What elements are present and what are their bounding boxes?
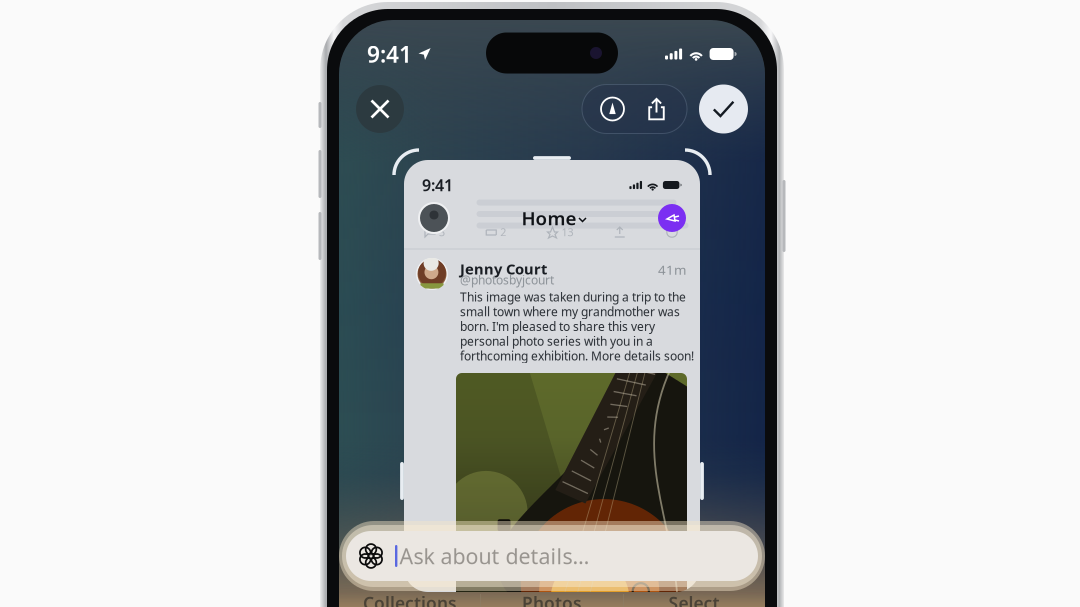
staticText: This image was taken during a trip to th… <box>460 289 686 305</box>
button[interactable]: Share <box>634 85 678 133</box>
staticText: 2 <box>500 225 506 239</box>
staticText: 3 <box>439 225 445 239</box>
button[interactable]: Markup <box>590 85 634 133</box>
staticText: small town where my grandmother was <box>460 304 680 320</box>
staticText: @photosbyjcourt <box>460 272 554 288</box>
staticText: Home <box>521 206 576 230</box>
staticText: 41m <box>658 261 686 278</box>
button[interactable]: Close <box>356 85 404 133</box>
staticText: Ask about details… <box>399 542 589 570</box>
staticText: 9:41 <box>367 39 412 69</box>
staticText: forthcoming exhibition. More details soo… <box>460 348 694 364</box>
staticText: 9:41 <box>422 174 453 196</box>
staticText: born. I'm pleased to share this very <box>460 318 655 334</box>
staticText: Jenny Court <box>460 259 547 278</box>
staticText: personal photo series with you in a <box>460 333 653 349</box>
button[interactable]: Done <box>699 84 748 133</box>
staticText: Collections <box>363 591 457 607</box>
staticText: Photos <box>522 591 582 607</box>
staticText: Select <box>668 591 719 607</box>
staticText: 13 <box>561 225 573 239</box>
